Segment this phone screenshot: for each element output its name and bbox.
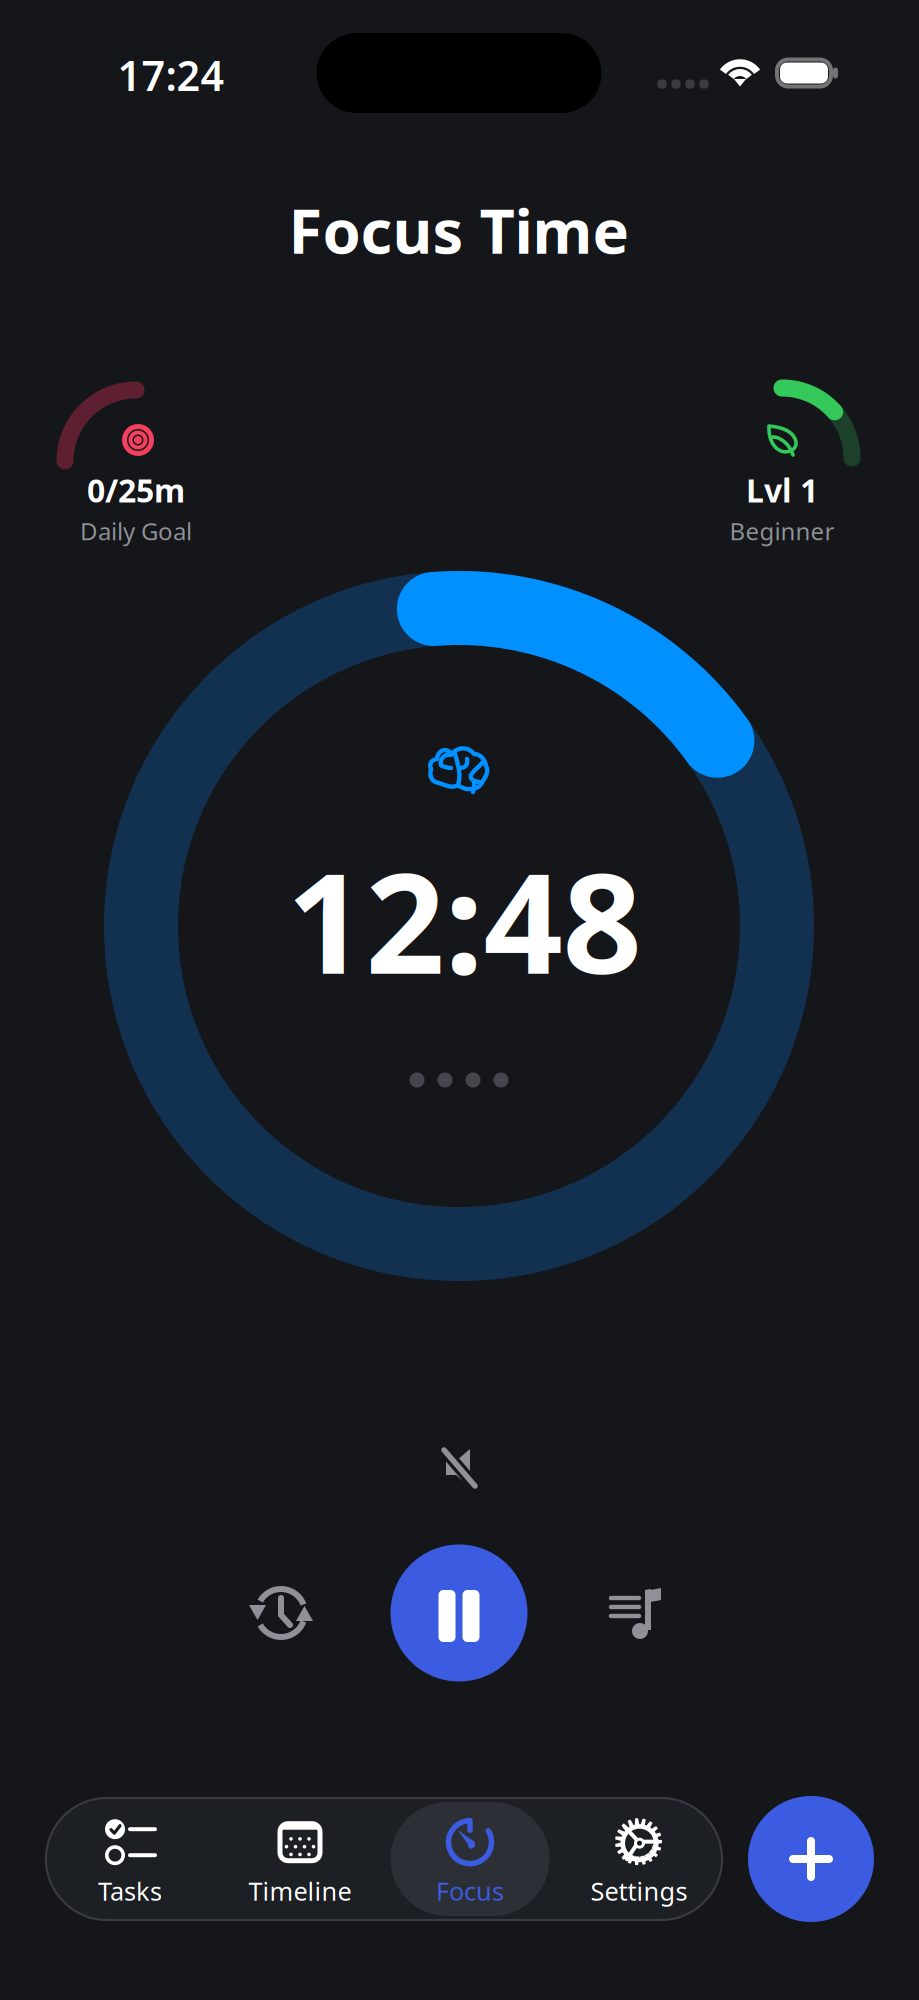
staticText: Tasks bbox=[98, 1874, 162, 1908]
staticText: Focus Time bbox=[288, 189, 629, 271]
button[interactable]: Tasks bbox=[50, 1802, 209, 1916]
button[interactable]: Timeline bbox=[220, 1802, 379, 1916]
button[interactable]: Add bbox=[748, 1796, 874, 1922]
staticText: 12:48 bbox=[286, 828, 641, 1012]
button[interactable]: Reset timer bbox=[231, 1563, 331, 1663]
button[interactable]: Settings bbox=[559, 1802, 718, 1916]
button[interactable]: Playlist bbox=[586, 1563, 686, 1663]
staticText: Timeline bbox=[248, 1874, 351, 1908]
staticText: Focus bbox=[436, 1874, 504, 1908]
staticText: Beginner bbox=[729, 515, 834, 547]
staticText: Daily Goal bbox=[80, 515, 192, 547]
staticText: Settings bbox=[590, 1874, 687, 1908]
button[interactable]: Pause bbox=[390, 1544, 527, 1681]
staticText: Lvl 1 bbox=[746, 469, 818, 511]
staticText: 0/25m bbox=[87, 469, 185, 511]
button[interactable]: Sound off bbox=[414, 1423, 504, 1513]
button[interactable]: Focus bbox=[390, 1802, 549, 1916]
staticText: 17:24 bbox=[117, 48, 224, 102]
